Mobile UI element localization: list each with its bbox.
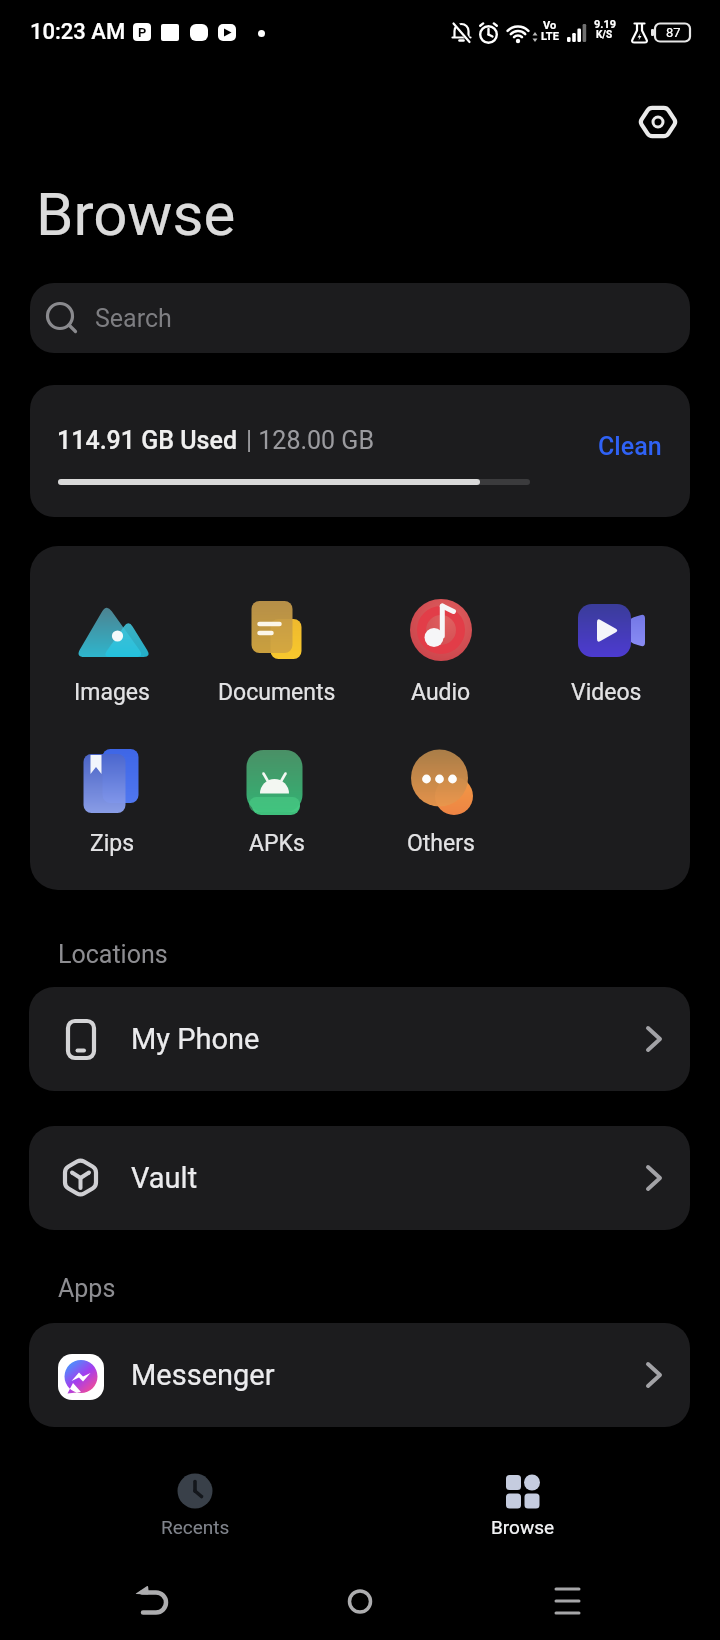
button[interactable]: Others	[359, 737, 523, 865]
staticText: Browse	[491, 1516, 555, 1538]
staticText: LTE	[541, 30, 559, 43]
button[interactable]: Zips	[30, 737, 194, 865]
staticText: My Phone	[131, 1022, 260, 1056]
staticText: Documents	[218, 679, 336, 706]
button[interactable]: Search	[30, 283, 690, 353]
staticText: Others	[407, 830, 475, 857]
staticText: P	[138, 25, 147, 40]
staticText: K/S	[596, 29, 613, 41]
button[interactable]: Clean	[585, 423, 675, 469]
button[interactable]	[535, 1575, 605, 1630]
staticText: Messenger	[131, 1358, 275, 1392]
button[interactable]: Recents	[125, 1460, 265, 1544]
button[interactable]	[330, 1575, 390, 1630]
button[interactable]: Documents	[195, 586, 359, 714]
staticText: APKs	[249, 830, 305, 857]
staticText: Browse	[36, 179, 236, 249]
staticText: Apps	[58, 1274, 116, 1303]
button[interactable]	[120, 1575, 190, 1630]
button[interactable]	[632, 98, 684, 146]
staticText: 114.91 GB Used	[57, 426, 238, 455]
staticText: Vault	[131, 1161, 198, 1195]
staticText: 9.19	[594, 18, 617, 31]
button[interactable]: Audio	[359, 586, 523, 714]
staticText: Videos	[571, 679, 642, 706]
button[interactable]: APKs	[195, 737, 359, 865]
button[interactable]: Images	[30, 586, 194, 714]
button[interactable]: Messenger	[29, 1323, 690, 1427]
staticText: Search	[95, 304, 172, 333]
staticText: Zips	[90, 830, 135, 857]
staticText: Clean	[598, 432, 662, 461]
button[interactable]: Videos	[524, 586, 688, 714]
staticText: 87	[666, 25, 681, 40]
staticText: Images	[74, 679, 150, 706]
button[interactable]: My Phone	[29, 987, 690, 1091]
staticText: Audio	[411, 679, 471, 706]
staticText: Vo	[543, 19, 557, 32]
button[interactable]: Vault	[29, 1126, 690, 1230]
staticText: 10:23 AM	[30, 19, 126, 45]
button[interactable]: Browse	[453, 1460, 593, 1544]
staticText: Locations	[58, 940, 168, 969]
button[interactable]: 114.91 GB Used	[30, 385, 690, 517]
staticText: | 128.00 GB	[246, 426, 374, 455]
staticText: Recents	[161, 1516, 230, 1538]
